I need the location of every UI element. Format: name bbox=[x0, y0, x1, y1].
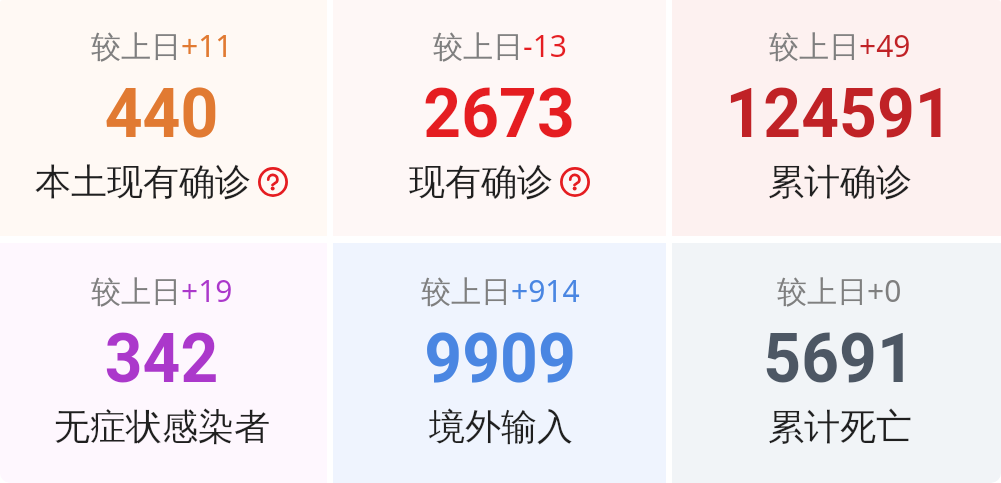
staticText: 2673 bbox=[423, 74, 576, 154]
button[interactable]: 较上日-13 bbox=[333, 0, 666, 236]
button[interactable]: 较上日+0 bbox=[672, 243, 1001, 483]
staticText: 较上日+914 bbox=[421, 270, 580, 311]
staticText: 较上日+0 bbox=[777, 270, 902, 311]
staticText: 较上日+19 bbox=[91, 270, 233, 311]
staticText: 342 bbox=[105, 319, 219, 399]
staticText: 较上日-13 bbox=[433, 25, 567, 66]
staticText: 124591 bbox=[725, 74, 953, 154]
staticText: 境外输入 bbox=[429, 404, 573, 449]
staticText: 9909 bbox=[424, 319, 577, 399]
button[interactable]: 较上日+19 bbox=[0, 243, 327, 483]
staticText: 现有确诊 bbox=[409, 159, 553, 204]
staticText: 440 bbox=[105, 74, 219, 154]
button[interactable]: 较上日+914 bbox=[333, 243, 666, 483]
staticText: 本土现有确诊 bbox=[35, 159, 251, 204]
staticText: 累计确诊 bbox=[768, 159, 912, 204]
staticText: 较上日+49 bbox=[769, 25, 911, 66]
other: More info bbox=[258, 167, 288, 197]
staticText: 较上日+11 bbox=[91, 25, 233, 66]
button[interactable]: 较上日+49 bbox=[672, 0, 1001, 236]
staticText: 5691 bbox=[763, 319, 916, 399]
staticText: 无症状感染者 bbox=[54, 404, 270, 449]
button[interactable]: 较上日+11 bbox=[0, 0, 327, 236]
staticText: 累计死亡 bbox=[768, 404, 912, 449]
other: More info bbox=[560, 167, 590, 197]
